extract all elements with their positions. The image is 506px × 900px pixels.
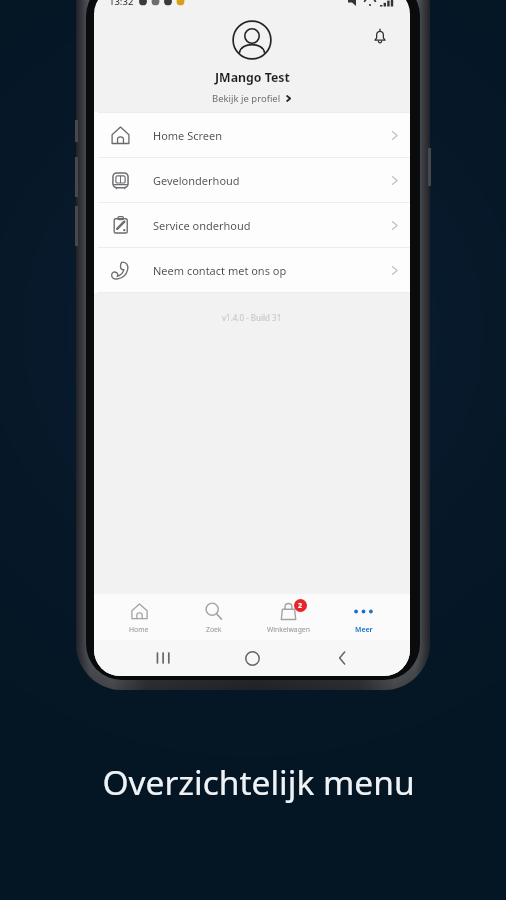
staticText: Gevelonderhoud [153, 173, 240, 188]
staticText: Overzichtelijk menu [102, 759, 415, 805]
button[interactable]: Meer [326, 594, 401, 640]
staticText: 13:32 [109, 0, 134, 8]
button[interactable]: Bekijk je profiel [204, 89, 300, 108]
button[interactable]: Gevelonderhoud [94, 158, 410, 202]
staticText: Meer [355, 625, 373, 634]
staticText: 2 [298, 601, 303, 611]
staticText: v1.4.0 - Build 31 [222, 312, 282, 323]
button[interactable]: Service onderhoud [94, 203, 410, 247]
staticText: Service onderhoud [153, 218, 251, 233]
button[interactable]: Notifications [364, 20, 396, 52]
staticText: Home [129, 625, 149, 634]
button[interactable]: Home Screen [94, 113, 410, 157]
staticText: JMango Test [215, 69, 290, 86]
button[interactable]: Zoek [176, 594, 251, 640]
staticText: Bekijk je profiel [212, 92, 281, 105]
button[interactable]: 2 [251, 594, 326, 640]
button[interactable]: Neem contact met ons op [94, 248, 410, 292]
button[interactable]: Home [208, 640, 297, 676]
staticText: Zoek [206, 625, 222, 634]
staticText: Neem contact met ons op [153, 263, 287, 278]
button[interactable]: Recents [118, 640, 208, 676]
staticText: Home Screen [153, 128, 223, 143]
button[interactable]: Back [297, 640, 386, 676]
staticText: Winkelwagen [267, 625, 310, 634]
button[interactable]: Home [102, 594, 176, 640]
